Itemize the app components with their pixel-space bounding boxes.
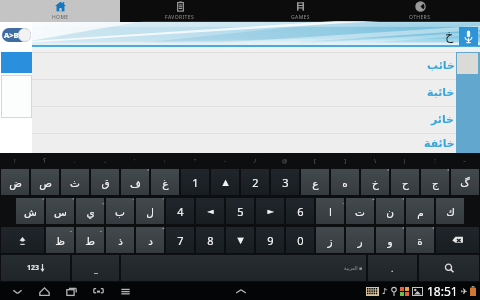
button[interactable]: ْ [376, 227, 404, 253]
staticText: 6 [297, 204, 304, 219]
button[interactable]: ِ [316, 198, 344, 224]
button[interactable]: ص [31, 169, 59, 195]
button[interactable]: Shift [1, 227, 44, 253]
staticText: غ [162, 177, 169, 189]
button[interactable]: ض [1, 169, 29, 195]
button[interactable]: Hide keyboard [4, 282, 31, 300]
button[interactable]: 1 [181, 169, 209, 195]
staticText: | [403, 157, 407, 165]
button[interactable]: ً [16, 198, 44, 224]
staticText: ظ [55, 235, 65, 247]
button[interactable]: 0 [286, 227, 314, 253]
staticText: GAMES [291, 14, 310, 21]
button[interactable]: 4 [166, 198, 194, 224]
staticText: ج [432, 177, 439, 189]
staticText: _ [94, 262, 98, 274]
button[interactable]: HOME [0, 0, 120, 22]
button[interactable]: ّ [136, 227, 164, 253]
button[interactable]: خائب [0, 52, 480, 79]
button[interactable]: ▼ [226, 227, 254, 253]
button[interactable]: Recents [58, 282, 85, 300]
staticText: \ [374, 157, 377, 165]
button[interactable]: ْ [406, 227, 434, 253]
button[interactable]: _ [72, 255, 119, 281]
button[interactable]: ُ [136, 198, 164, 224]
button[interactable]: ق [91, 169, 119, 195]
staticText: ل [146, 206, 154, 218]
button[interactable]: ح [391, 169, 419, 195]
staticText: HOME [52, 14, 69, 21]
button[interactable]: Voice input [459, 27, 478, 46]
button[interactable]: ْ [121, 169, 149, 195]
button[interactable]: ◄ [196, 198, 224, 224]
button[interactable]: ▲ [211, 169, 239, 195]
button[interactable]: Menu [112, 282, 139, 300]
staticText: ! [14, 157, 16, 165]
button[interactable]: ْ [376, 198, 404, 224]
button[interactable]: OTHERS [360, 0, 480, 22]
staticText: 1 [192, 175, 199, 190]
button[interactable]: 9 [256, 227, 284, 253]
staticText: ] [344, 157, 346, 165]
button[interactable]: Screenshot [85, 282, 112, 300]
staticText: العربية ▪ [344, 265, 363, 272]
button[interactable]: A>B [2, 28, 31, 42]
button[interactable]: 7 [166, 227, 194, 253]
staticText: ض [9, 177, 22, 189]
staticText: م [417, 206, 424, 218]
button[interactable]: خائر [0, 106, 480, 133]
button[interactable]: 123 [1, 255, 70, 281]
button[interactable]: ـ [76, 227, 104, 253]
button[interactable]: ٍ [76, 198, 104, 224]
button[interactable]: ّ [346, 198, 374, 224]
staticText: س [54, 206, 67, 218]
staticText: 3 [282, 175, 289, 190]
button[interactable]: Expand [228, 282, 254, 300]
button[interactable]: ه [331, 169, 359, 195]
button[interactable]: Space [121, 255, 366, 281]
button[interactable]: ع [301, 169, 329, 195]
button[interactable]: ز [316, 227, 344, 253]
button[interactable]: 2 [241, 169, 269, 195]
button[interactable]: Home [31, 282, 58, 300]
button[interactable]: َ [106, 198, 134, 224]
button[interactable]: 8 [196, 227, 224, 253]
button[interactable]: خائفة [0, 133, 480, 153]
staticText: ـ [70, 227, 72, 233]
button[interactable]: Search [419, 255, 479, 281]
button[interactable]: خائبة [0, 79, 480, 106]
button[interactable]: . [368, 255, 417, 281]
staticText: ► [267, 207, 274, 216]
staticText: - [224, 157, 226, 165]
staticText: 2 [252, 175, 259, 190]
button[interactable]: ٌ [46, 198, 74, 224]
staticText: خائب [427, 59, 455, 72]
button[interactable] [1, 75, 32, 118]
button[interactable]: ْ [421, 169, 449, 195]
staticText: ذ [118, 235, 123, 247]
staticText: . [74, 157, 76, 165]
staticText: خ [445, 28, 454, 43]
staticText: ع [312, 177, 319, 189]
staticText: ك [446, 206, 455, 218]
button[interactable]: Backspace [436, 227, 479, 253]
button[interactable]: ك [436, 198, 464, 224]
button[interactable]: گ [451, 169, 479, 195]
button[interactable]: GAMES [240, 0, 360, 22]
button[interactable]: ذ [106, 227, 134, 253]
button[interactable]: FAVORITES [120, 0, 240, 22]
staticText: . [391, 262, 394, 274]
staticText: ت [355, 206, 365, 218]
staticText: 18:51 [427, 283, 458, 299]
button[interactable]: غ [151, 169, 179, 195]
button[interactable]: م [406, 198, 434, 224]
button[interactable]: ْ [361, 169, 389, 195]
button[interactable]: 6 [286, 198, 314, 224]
button[interactable]: ► [256, 198, 284, 224]
button[interactable]: ـ [46, 227, 74, 253]
button[interactable]: 3 [271, 169, 299, 195]
button[interactable]: ر [346, 227, 374, 253]
button[interactable]: ث [61, 169, 89, 195]
button[interactable]: 5 [226, 198, 254, 224]
